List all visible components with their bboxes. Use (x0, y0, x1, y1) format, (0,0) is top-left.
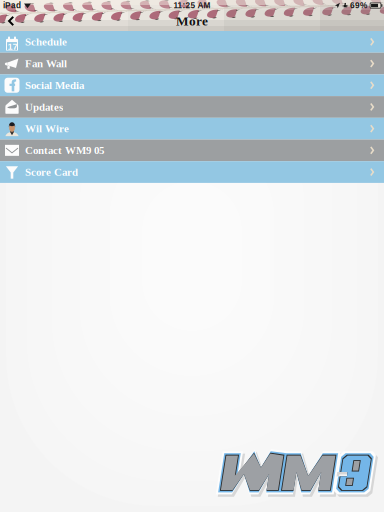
staticText: Score Card (25, 166, 78, 178)
staticText: More (176, 14, 208, 28)
button[interactable]: Score Card (0, 161, 384, 183)
button[interactable]: Contact WM9 05 (0, 139, 384, 161)
staticText: Schedule (25, 36, 67, 48)
staticText: Updates (25, 101, 63, 113)
button[interactable]: Back (0, 16, 15, 26)
staticText: Contact WM9 05 (25, 144, 104, 156)
button[interactable]: 17 (0, 31, 384, 53)
button[interactable]: Social Media (0, 74, 384, 96)
staticText: iPad (3, 1, 21, 10)
button[interactable]: Fan Wall (0, 53, 384, 74)
button[interactable]: Updates (0, 96, 384, 118)
staticText: Wil Wire (25, 123, 69, 135)
staticText: Social Media (25, 79, 84, 91)
button[interactable]: Wil Wire (0, 118, 384, 139)
staticText: 11:25 AM (173, 1, 210, 10)
staticText: Fan Wall (25, 57, 67, 70)
staticText: 17 (8, 41, 18, 52)
staticText: 69% (350, 1, 367, 10)
